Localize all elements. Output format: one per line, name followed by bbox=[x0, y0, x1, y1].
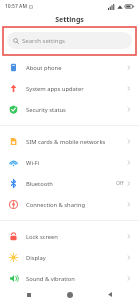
staticText: Connection & sharing bbox=[26, 201, 127, 209]
button[interactable]: Connection & sharing bbox=[0, 194, 139, 215]
staticText: Sound & vibration bbox=[26, 275, 127, 283]
button[interactable]: Bluetooth bbox=[0, 173, 139, 194]
staticText: Settings bbox=[55, 15, 84, 25]
button[interactable]: Recent apps bbox=[17, 289, 41, 300]
button[interactable]: Security status bbox=[0, 99, 139, 120]
button[interactable]: System apps updater bbox=[0, 78, 139, 99]
button[interactable]: SIM cards & mobile networks bbox=[0, 131, 139, 152]
button[interactable]: Lock screen bbox=[0, 226, 139, 247]
staticText: Bluetooth bbox=[26, 180, 116, 188]
button[interactable]: Wi-Fi bbox=[0, 152, 139, 173]
button[interactable]: Home bbox=[58, 289, 82, 300]
button[interactable]: Back bbox=[98, 289, 122, 300]
button[interactable]: Display bbox=[0, 247, 139, 268]
staticText: Off bbox=[116, 180, 124, 187]
staticText: Display bbox=[26, 254, 127, 262]
button[interactable]: Search settings bbox=[7, 32, 132, 49]
staticText: About phone bbox=[26, 64, 127, 72]
staticText: 10:57 AM bbox=[5, 3, 27, 10]
staticText: SIM cards & mobile networks bbox=[26, 138, 127, 146]
staticText: Wi-Fi bbox=[26, 159, 127, 167]
staticText: Search settings bbox=[22, 37, 65, 45]
button[interactable]: Sound & vibration bbox=[0, 268, 139, 289]
button[interactable]: About phone bbox=[0, 57, 139, 78]
staticText: Security status bbox=[26, 106, 127, 114]
staticText: Lock screen bbox=[26, 233, 127, 241]
staticText: System apps updater bbox=[26, 85, 127, 93]
